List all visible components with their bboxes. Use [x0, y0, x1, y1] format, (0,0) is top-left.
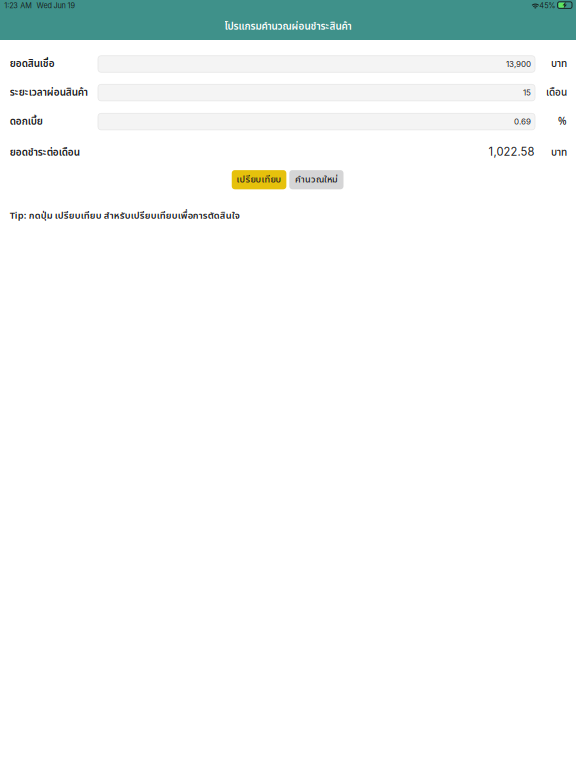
staticText: Tip: กดปุ่ม เปรียบเทียบ สำหรับเปรียบเทีย…: [10, 209, 240, 223]
staticText: 1,022.58: [489, 145, 535, 159]
staticText: คำนวณใหม่: [295, 173, 338, 187]
staticText: ระยะเวลาผ่อนสินค้า: [10, 85, 88, 100]
staticText: บาท: [551, 145, 567, 160]
staticText: 0.69: [514, 117, 531, 126]
staticText: เดือน: [546, 85, 567, 100]
staticText: %: [558, 114, 567, 129]
staticText: 13,900: [506, 59, 531, 69]
button[interactable]: คำนวณใหม่: [289, 170, 343, 189]
staticText: ยอดชำระต่อเดือน: [10, 145, 80, 160]
staticText: ดอกเบี้ย: [10, 114, 43, 129]
staticText: Wed Jun 19: [36, 1, 75, 10]
staticText: ยอดสินเชื่อ: [10, 56, 55, 71]
staticText: โปรแกรมคำนวณผ่อนชำระสินค้า: [224, 19, 351, 34]
staticText: 1:23 AM: [4, 1, 32, 10]
staticText: เปรียบเทียบ: [237, 173, 282, 187]
staticText: บาท: [551, 56, 567, 71]
button[interactable]: เปรียบเทียบ: [232, 170, 286, 189]
staticText: 45%: [539, 1, 555, 10]
staticText: 15: [523, 88, 531, 97]
